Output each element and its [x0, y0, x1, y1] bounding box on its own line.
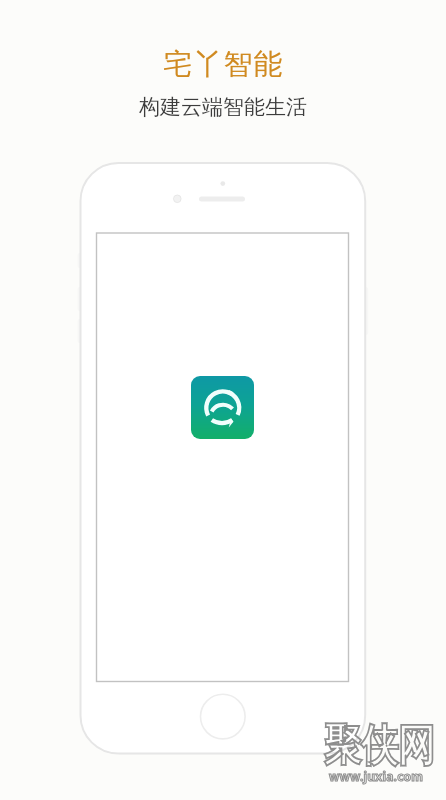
- staticText: 构建云端智能生活: [139, 94, 307, 120]
- staticText: 聚侠网: [324, 719, 435, 774]
- staticText: 宅丫智能: [163, 46, 283, 83]
- button[interactable]: 宅丫智能 app icon: [191, 376, 254, 439]
- staticText: www.juxia.com: [329, 768, 424, 784]
